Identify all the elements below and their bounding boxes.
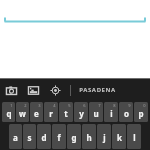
staticText: t [64, 108, 68, 119]
button[interactable]: a [9, 124, 22, 149]
button[interactable]: l [127, 124, 141, 149]
button[interactable]: 1 [2, 102, 15, 122]
staticText: 9 [128, 103, 131, 108]
staticText: g [71, 132, 77, 143]
button[interactable]: h [82, 124, 96, 149]
button[interactable]: 9 [119, 102, 133, 122]
staticText: 6 [83, 103, 86, 108]
staticText: a [13, 132, 18, 143]
staticText: i [110, 108, 113, 119]
staticText: j [103, 132, 106, 143]
staticText: f [57, 132, 61, 143]
button[interactable]: 8 [104, 102, 118, 122]
staticText: 8 [113, 103, 116, 108]
button[interactable]: Take photo [0, 79, 22, 101]
staticText: d [41, 132, 47, 143]
staticText: 1 [10, 103, 13, 108]
staticText: h [86, 132, 92, 143]
button[interactable]: j [97, 124, 111, 149]
staticText: 5 [68, 103, 71, 108]
button[interactable]: Current location [44, 79, 66, 101]
staticText: 0 [143, 103, 146, 108]
staticText: s [27, 132, 32, 143]
staticText: 4 [53, 103, 56, 108]
button[interactable]: 6 [74, 102, 88, 122]
staticText: y [79, 108, 84, 119]
button[interactable]: Choose image [22, 79, 44, 101]
button[interactable]: 7 [89, 102, 103, 122]
button[interactable]: g [67, 124, 81, 149]
button[interactable]: s [23, 124, 36, 149]
staticText: q [6, 108, 12, 119]
button[interactable]: 2 [16, 102, 29, 122]
staticText: e [34, 108, 39, 119]
staticText: PASADENA [79, 86, 116, 94]
button[interactable]: PASADENA [79, 79, 116, 101]
staticText: l [133, 132, 136, 143]
staticText: 2 [24, 103, 27, 108]
button[interactable] [0, 0, 150, 24]
staticText: u [93, 108, 99, 119]
staticText: o [124, 108, 129, 119]
button[interactable]: d [37, 124, 51, 149]
staticText: r [49, 108, 53, 119]
button[interactable]: 4 [44, 102, 58, 122]
button[interactable]: 3 [30, 102, 43, 122]
staticText: 3 [38, 103, 41, 108]
button[interactable]: 0 [134, 102, 148, 122]
staticText: w [19, 108, 26, 119]
staticText: k [117, 132, 122, 143]
button[interactable]: f [52, 124, 66, 149]
staticText: 7 [98, 103, 101, 108]
button[interactable]: k [112, 124, 126, 149]
button[interactable]: 5 [59, 102, 73, 122]
staticText: p [138, 108, 144, 119]
